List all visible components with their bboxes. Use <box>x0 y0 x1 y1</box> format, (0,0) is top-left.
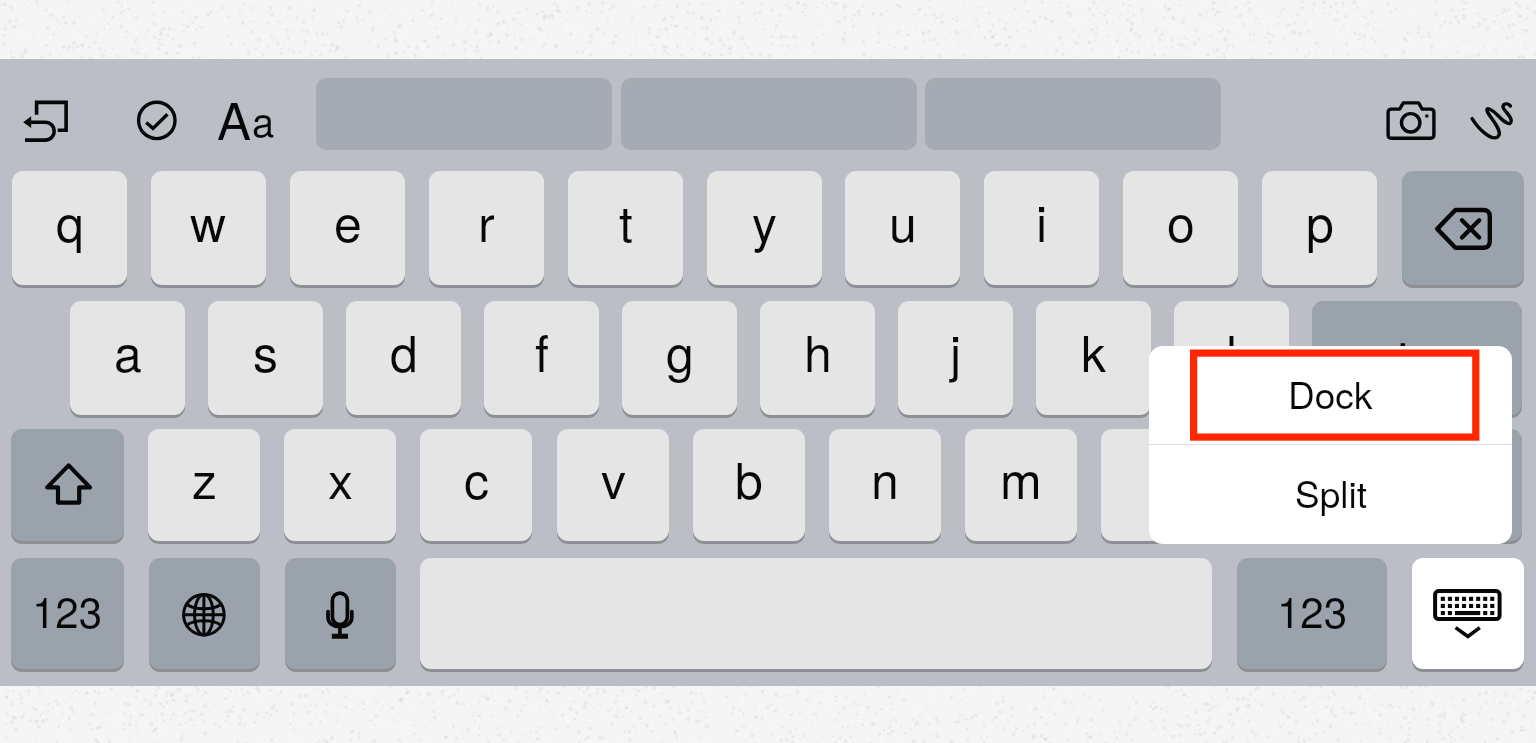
staticText: h <box>804 315 832 387</box>
staticText: z <box>192 442 217 514</box>
staticText: q <box>56 185 84 257</box>
button[interactable]: t <box>568 171 683 285</box>
staticText: l <box>1226 315 1238 387</box>
button[interactable]: Undo <box>18 94 74 150</box>
staticText: a <box>114 315 142 387</box>
button[interactable]: z <box>148 429 260 541</box>
button[interactable]: x <box>284 429 396 541</box>
staticText: i <box>1036 185 1048 257</box>
staticText: p <box>1306 185 1334 257</box>
button[interactable]: Dock <box>1149 346 1512 444</box>
staticText: . <box>1287 442 1301 514</box>
staticText: w <box>190 185 227 257</box>
staticText: Split <box>1295 466 1367 519</box>
button[interactable]: Check <box>131 95 183 147</box>
button[interactable]: s <box>208 301 323 415</box>
button[interactable]: Camera <box>1385 99 1437 141</box>
button[interactable]: f <box>484 301 599 415</box>
staticText: d <box>390 315 418 387</box>
button[interactable]: n <box>829 429 941 541</box>
staticText: r <box>478 185 495 257</box>
button[interactable]: u <box>845 171 960 285</box>
staticText: , <box>1150 442 1164 514</box>
button[interactable]: c <box>420 429 532 541</box>
button[interactable]: l <box>1174 301 1289 415</box>
button[interactable]: Text format <box>210 80 280 150</box>
staticText: m <box>1000 442 1042 514</box>
staticText: g <box>666 315 694 387</box>
staticText: o <box>1167 185 1195 257</box>
button[interactable]: Backspace <box>1402 171 1524 285</box>
button[interactable]: Shift right <box>1312 429 1522 541</box>
button[interactable]: g <box>622 301 737 415</box>
button[interactable]: p <box>1262 171 1377 285</box>
staticText: k <box>1081 315 1106 387</box>
staticText: s <box>253 315 278 387</box>
staticText: v <box>601 442 626 514</box>
staticText: n <box>871 442 899 514</box>
button[interactable]: Hide keyboard <box>1412 558 1524 669</box>
button[interactable]: Dictation <box>285 558 396 669</box>
button[interactable]: o <box>1123 171 1238 285</box>
button[interactable]: b <box>693 429 805 541</box>
button[interactable]: 123 <box>11 558 124 669</box>
staticText: 123 <box>1277 580 1348 640</box>
staticText: b <box>735 442 763 514</box>
button[interactable]: . <box>1238 429 1350 541</box>
button[interactable]: r <box>429 171 544 285</box>
button[interactable]: Change language <box>149 558 260 669</box>
staticText: x <box>328 442 353 514</box>
button[interactable]: e <box>290 171 405 285</box>
staticText: Dock <box>1288 367 1373 420</box>
button[interactable]: Split <box>1149 445 1512 544</box>
staticText: c <box>464 442 489 514</box>
staticText: y <box>752 185 777 257</box>
staticText: f <box>535 315 549 387</box>
staticText: e <box>334 185 362 257</box>
button[interactable]: 123 <box>1237 558 1387 669</box>
button[interactable]: w <box>151 171 266 285</box>
staticText: u <box>889 185 917 257</box>
button[interactable]: h <box>760 301 875 415</box>
button[interactable]: j <box>898 301 1013 415</box>
button[interactable]: m <box>965 429 1077 541</box>
staticText: a <box>252 91 275 148</box>
button[interactable]: q <box>12 171 127 285</box>
button[interactable]: Return <box>1312 301 1522 415</box>
staticText: A <box>217 81 252 151</box>
button[interactable]: Shift <box>11 429 124 541</box>
button[interactable]: d <box>346 301 461 415</box>
button[interactable]: Scribble <box>1468 98 1518 144</box>
staticText: t <box>619 185 633 257</box>
button[interactable]: , <box>1101 429 1213 541</box>
button[interactable]: y <box>707 171 822 285</box>
button[interactable]: i <box>984 171 1099 285</box>
button[interactable]: v <box>557 429 669 541</box>
button[interactable]: k <box>1036 301 1151 415</box>
staticText: j <box>950 315 962 387</box>
staticText: 123 <box>32 580 103 640</box>
button[interactable]: a <box>70 301 185 415</box>
